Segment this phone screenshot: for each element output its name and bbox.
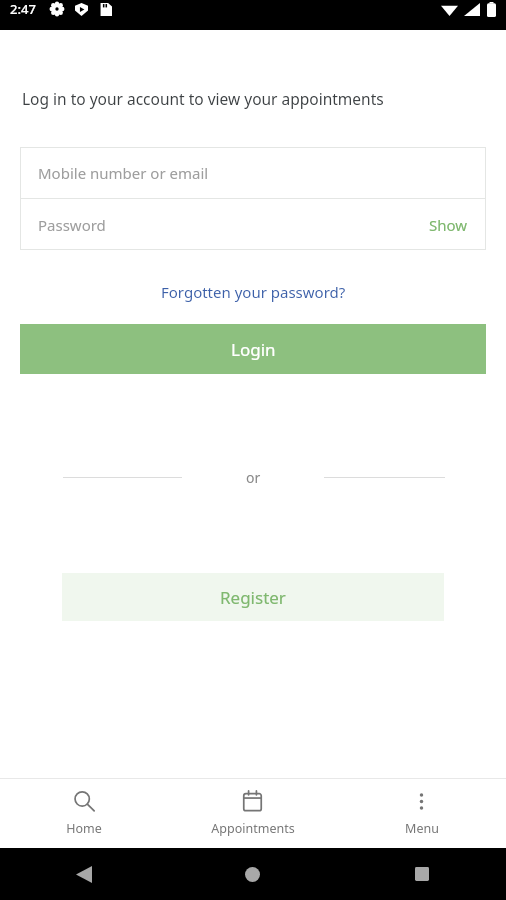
button[interactable]: Login: [20, 324, 486, 374]
staticText: Mobile number or email: [38, 163, 209, 183]
button[interactable]: Recent apps: [337, 848, 506, 900]
staticText: Login: [231, 338, 276, 361]
staticText: Home: [66, 820, 102, 837]
button[interactable]: Mobile number or email: [20, 147, 486, 198]
button[interactable]: Forgotten your password?: [149, 278, 358, 306]
staticText: Forgotten your password?: [161, 282, 346, 302]
staticText: Show: [429, 215, 468, 235]
staticText: Appointments: [211, 820, 295, 837]
staticText: or: [246, 468, 261, 487]
staticText: Password: [38, 215, 106, 235]
staticText: Menu: [405, 820, 439, 837]
staticText: Register: [220, 586, 286, 609]
staticText: 2:47: [10, 0, 36, 18]
button[interactable]: Back: [0, 848, 168, 900]
button[interactable]: Home: [168, 848, 337, 900]
button[interactable]: Password: [38, 215, 421, 235]
button[interactable]: Home: [0, 779, 168, 848]
button[interactable]: Menu: [337, 779, 506, 848]
button[interactable]: Register: [62, 573, 444, 621]
staticText: Log in to your account to view your appo…: [22, 88, 384, 109]
button[interactable]: Show: [421, 209, 468, 241]
button[interactable]: Appointments: [168, 779, 337, 848]
